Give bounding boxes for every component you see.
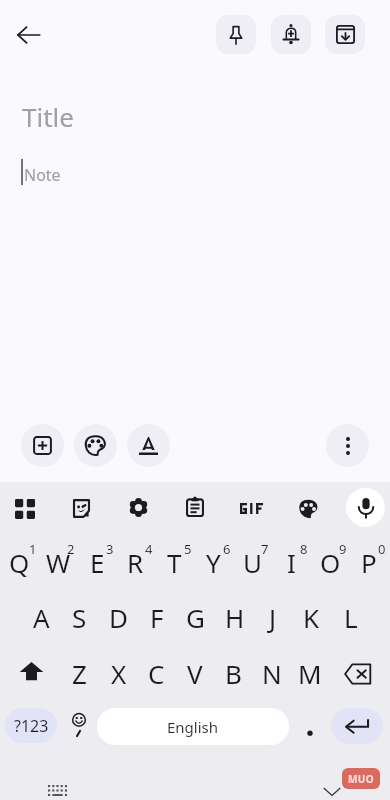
button[interactable]: J [253,592,292,642]
staticText: Z [72,656,87,691]
staticText: B [225,656,242,691]
staticText: 7 [261,540,269,556]
staticText: Q [9,545,30,580]
button[interactable]: More options [326,424,369,467]
button[interactable]: Add attachment [21,424,64,467]
staticText: I [287,545,296,580]
button[interactable]: F [137,592,176,642]
staticText: 6 [223,540,231,556]
button[interactable]: Voice input [346,488,385,527]
staticText: 3 [106,540,114,556]
button[interactable]: English [97,708,289,745]
button[interactable]: Settings [119,488,157,526]
button[interactable]: Apps [6,489,44,527]
button[interactable]: G [176,592,215,642]
button[interactable]: I [272,537,311,587]
button[interactable]: Hide keyboard [315,778,349,800]
staticText: 0 [378,540,386,556]
staticText: 1 [29,540,37,556]
staticText: G [186,600,205,635]
button[interactable]: Reminder [271,15,311,54]
button[interactable]: Enter [331,708,383,744]
staticText: U [243,545,263,580]
button[interactable]: V [175,648,214,698]
staticText: P [361,545,377,580]
staticText: L [344,600,358,635]
button[interactable] [292,707,328,745]
button[interactable]: GIF [231,491,271,525]
button[interactable]: Z [60,648,99,698]
staticText: J [269,600,277,635]
staticText: A [33,600,50,635]
button[interactable]: H [215,592,254,642]
staticText: O [320,545,341,580]
staticText: X [111,656,127,691]
staticText: Title [22,99,74,134]
button[interactable]: A [22,592,61,642]
button[interactable]: Stickers [62,489,100,527]
staticText: D [109,600,128,635]
button[interactable]: K [292,592,331,642]
button[interactable]: L [331,592,370,642]
staticText: 9 [339,540,347,556]
staticText: N [262,656,282,691]
staticText: 4 [145,540,153,556]
staticText: S [72,600,87,635]
button[interactable]: Emoji [60,707,98,745]
button[interactable]: N [252,648,291,698]
button[interactable]: Clipboard [176,488,214,526]
staticText: R [127,545,144,580]
staticText: M [298,656,322,691]
button[interactable]: T [155,537,194,587]
button[interactable]: Backspace [336,649,380,699]
button[interactable]: B [214,648,253,698]
staticText: 2 [67,540,75,556]
button[interactable]: C [137,648,176,698]
staticText: ?123 [14,715,49,737]
staticText: T [167,545,182,580]
staticText: MUO [348,772,375,786]
button[interactable]: Pin [216,15,256,54]
button[interactable]: Back [6,13,50,57]
button[interactable]: Text formatting [127,424,170,467]
button[interactable]: W [39,537,78,587]
staticText: 5 [184,540,192,556]
button[interactable]: E [78,537,117,587]
staticText: V [187,656,203,691]
staticText: W [46,545,71,580]
button[interactable]: Change keyboard [40,777,74,800]
button[interactable]: R [116,537,155,587]
button[interactable]: Themes [289,489,327,527]
staticText: C [148,656,165,691]
staticText: H [225,600,245,635]
button[interactable]: O [311,537,350,587]
staticText: Note [24,164,61,186]
staticText: English [167,717,219,737]
staticText: 8 [300,540,308,556]
button[interactable]: ?123 [5,708,57,743]
button[interactable]: P [349,537,388,587]
button[interactable]: Background colour [74,424,117,467]
staticText: E [90,545,105,580]
staticText: F [150,600,164,635]
button[interactable]: Archive [325,15,365,54]
button[interactable]: S [60,592,99,642]
staticText: K [303,600,320,635]
button[interactable]: Shift [12,646,51,696]
button[interactable]: M [290,648,329,698]
staticText: Y [206,545,221,580]
button[interactable]: D [99,592,138,642]
button[interactable]: Y [194,537,233,587]
button[interactable]: X [99,648,138,698]
button[interactable]: U [233,537,272,587]
button[interactable]: Q [0,537,39,587]
